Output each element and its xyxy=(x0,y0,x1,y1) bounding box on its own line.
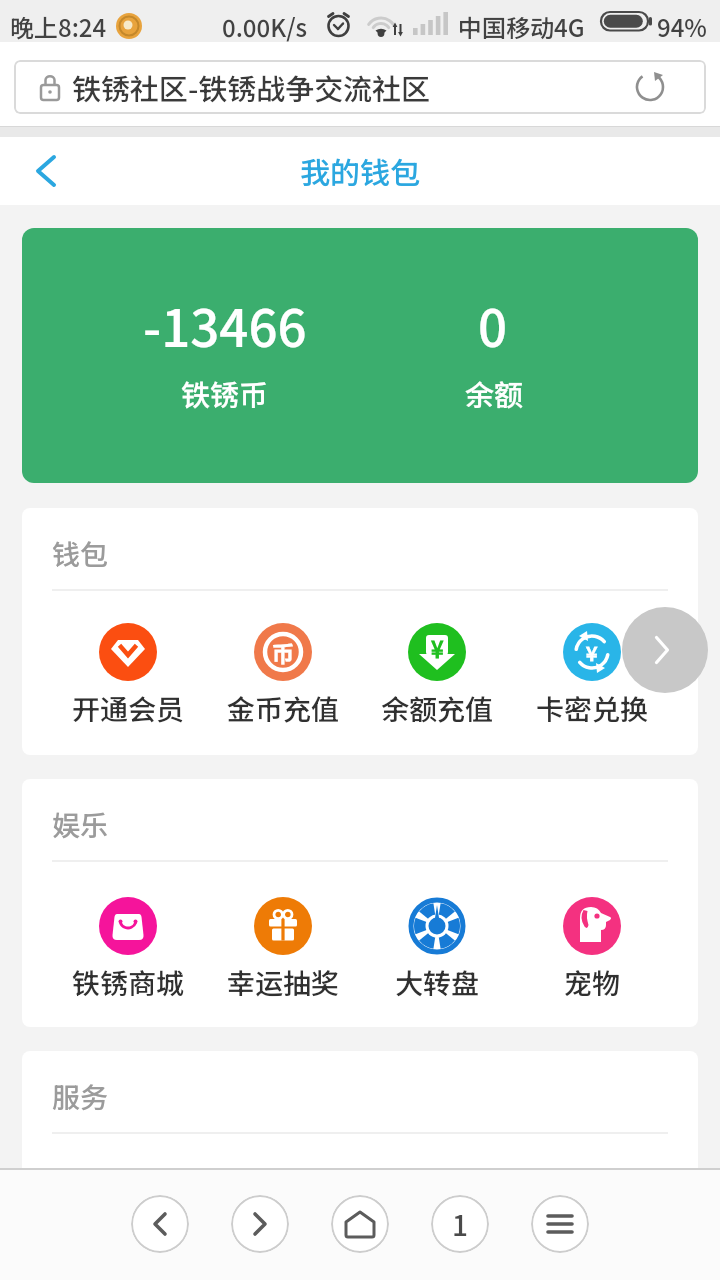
staticText: 0 xyxy=(478,288,508,362)
staticText: 宠物 xyxy=(564,962,621,1003)
button[interactable] xyxy=(515,612,669,730)
staticText: ¥ xyxy=(431,632,444,664)
staticText: 94% xyxy=(657,9,707,44)
button[interactable] xyxy=(51,612,205,730)
button[interactable] xyxy=(622,607,708,693)
staticText: 0.00K/s xyxy=(222,9,308,44)
button[interactable]: 1 xyxy=(431,1195,489,1253)
staticText: 币 xyxy=(272,636,295,668)
staticText: 卡密兑换 xyxy=(536,688,649,729)
button[interactable] xyxy=(231,1195,289,1253)
staticText: 铁锈商城 xyxy=(72,962,185,1003)
button[interactable] xyxy=(131,1195,189,1253)
staticText: 金币充值 xyxy=(227,688,340,729)
staticText: 晚上8:24 xyxy=(10,9,107,44)
button[interactable] xyxy=(206,886,360,1004)
staticText: 钱包 xyxy=(52,533,109,574)
button[interactable] xyxy=(22,228,698,483)
staticText: 幸运抽奖 xyxy=(227,962,340,1003)
button[interactable] xyxy=(51,886,205,1004)
staticText: 大转盘 xyxy=(395,962,480,1003)
button[interactable] xyxy=(360,612,514,730)
staticText: 铁锈币 xyxy=(181,372,269,414)
staticText: 中国移动4G xyxy=(458,9,585,44)
button[interactable] xyxy=(14,60,706,114)
staticText: 开通会员 xyxy=(72,688,185,729)
staticText: 余额 xyxy=(465,372,524,414)
button[interactable] xyxy=(531,1195,589,1253)
staticText: -13466 xyxy=(143,288,307,362)
button[interactable] xyxy=(515,886,669,1004)
staticText: 我的钱包 xyxy=(300,149,420,192)
staticText: 铁锈社区-铁锈战争交流社区 xyxy=(72,66,431,108)
button[interactable] xyxy=(206,612,360,730)
button[interactable] xyxy=(360,886,514,1004)
button[interactable] xyxy=(18,143,74,199)
button[interactable] xyxy=(331,1195,389,1253)
staticText: 1 xyxy=(452,1204,468,1245)
staticText: 余额充值 xyxy=(381,688,494,729)
staticText: 服务 xyxy=(52,1076,109,1117)
staticText: ¥ xyxy=(586,638,598,667)
staticText: 娱乐 xyxy=(52,804,109,845)
